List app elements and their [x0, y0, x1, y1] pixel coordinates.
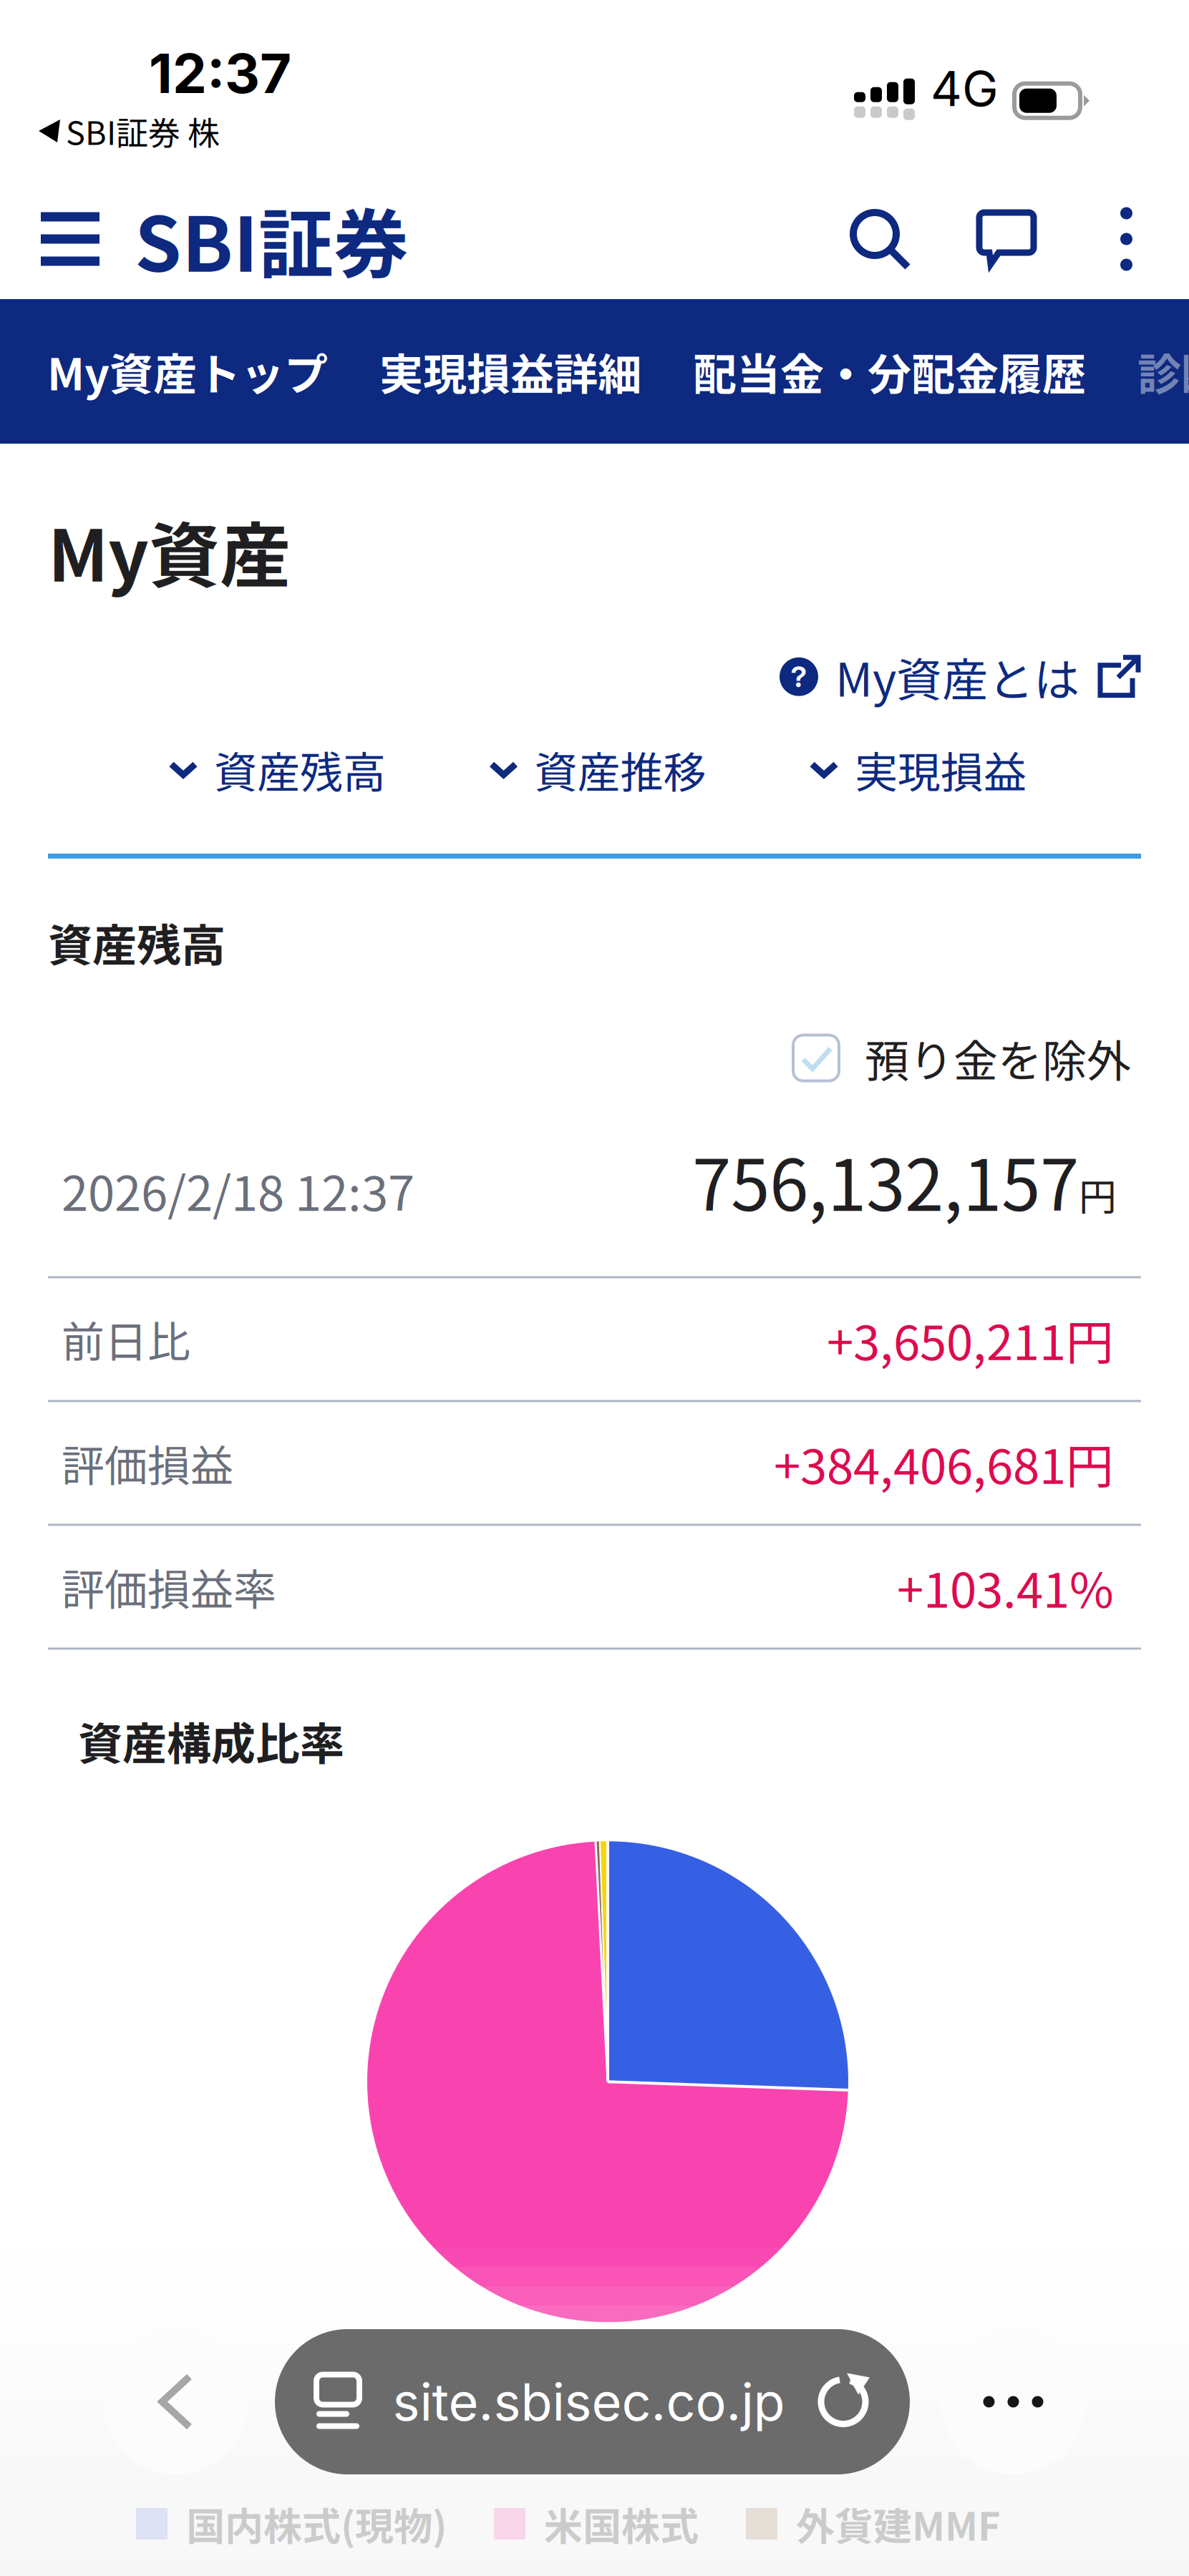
button[interactable]: 診断 — [1137, 299, 1189, 444]
button[interactable]: チャット — [938, 192, 1075, 286]
staticText: 資産推移 — [534, 738, 706, 801]
button[interactable]: 実現損益 — [809, 738, 1027, 801]
button[interactable]: 資産残高 — [168, 738, 386, 801]
staticText: 4G — [931, 59, 999, 118]
staticText: 評価損益 — [62, 1432, 233, 1494]
button[interactable]: その他のメニュー — [1075, 193, 1178, 285]
staticText: 2026/2/18 12:37 — [62, 1155, 414, 1225]
button[interactable]: site.sbisec.co.jp — [275, 2329, 910, 2474]
staticText: 国内株式(現物) — [186, 2496, 447, 2552]
button[interactable]: My資産トップ — [47, 299, 328, 444]
staticText: 資産残高 — [214, 738, 386, 801]
button[interactable]: その他 — [941, 2329, 1086, 2474]
staticText: SBI証券 株 — [66, 108, 220, 154]
staticText: 12:37 — [149, 40, 291, 106]
staticText: 米国株式 — [544, 2496, 699, 2552]
staticText: 資産残高 — [48, 910, 225, 974]
staticText: +3,650,211円 — [827, 1304, 1114, 1374]
button[interactable]: 資産推移 — [489, 738, 706, 801]
button[interactable]: 実現損益詳細 — [379, 299, 641, 444]
staticText: +103.41% — [897, 1552, 1114, 1621]
staticText: site.sbisec.co.jp — [393, 2371, 785, 2433]
staticText: 診断 — [1137, 340, 1189, 403]
button[interactable]: 検索 — [786, 189, 938, 289]
staticText: 資産構成比率 — [78, 1708, 344, 1773]
staticText: 預り金を除外 — [865, 1026, 1131, 1090]
staticText: ? — [791, 659, 807, 694]
staticText: 756,132,157 — [692, 1130, 1079, 1231]
staticText: +384,406,681円 — [774, 1428, 1114, 1498]
button[interactable]: メニュー — [10, 192, 130, 286]
button[interactable]: 配当金・分配金履歴 — [693, 299, 1086, 444]
staticText: 前日比 — [62, 1308, 190, 1370]
staticText: My資産とは — [835, 644, 1079, 710]
button[interactable]: 戻る — [103, 2329, 248, 2474]
staticText: 円 — [1079, 1167, 1117, 1222]
button[interactable]: ? — [780, 644, 1141, 710]
staticText: 実現損益 — [855, 738, 1027, 801]
staticText: 外貨建MMF — [796, 2496, 1001, 2552]
staticText: SBI証券 — [135, 185, 409, 293]
staticText: 配当金・分配金履歴 — [693, 340, 1086, 403]
button[interactable]: 預り金を除外 — [793, 1026, 1131, 1090]
staticText: My資産トップ — [47, 340, 328, 403]
staticText: 実現損益詳細 — [379, 340, 641, 403]
staticText: My資産 — [48, 499, 291, 602]
staticText: 評価損益率 — [62, 1556, 276, 1618]
